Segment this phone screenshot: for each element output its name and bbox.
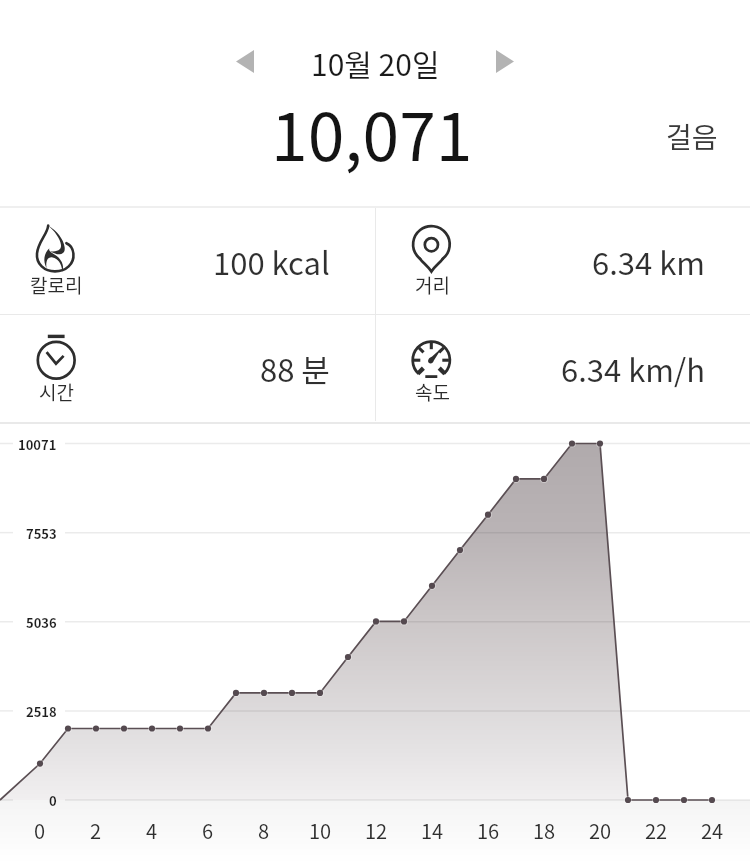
button[interactable]: Previous day xyxy=(222,38,268,85)
staticText: 5036 xyxy=(26,613,57,632)
staticText: 6.34 km xyxy=(592,239,705,284)
staticText: 8 xyxy=(258,816,270,840)
staticText: 88 분 xyxy=(260,346,330,391)
staticText: 10월 20일 xyxy=(311,41,440,84)
staticText: 20 xyxy=(589,816,612,840)
staticText: 0 xyxy=(49,791,57,810)
staticText: 걸음 xyxy=(666,116,718,157)
staticText: 6 xyxy=(202,816,214,840)
button[interactable]: 시간 xyxy=(0,315,375,421)
staticText: 거리 xyxy=(415,271,450,299)
staticText: 속도 xyxy=(415,378,450,406)
staticText: 18 xyxy=(533,816,556,840)
staticText: 0 xyxy=(34,816,46,840)
button[interactable]: 10월 20일 xyxy=(296,32,454,92)
staticText: 7553 xyxy=(26,524,57,543)
staticText: 2 xyxy=(90,816,102,840)
staticText: 6.34 km/h xyxy=(561,346,705,391)
staticText: 4 xyxy=(146,816,158,840)
staticText: 칼로리 xyxy=(30,271,83,299)
staticText: 16 xyxy=(477,816,500,840)
staticText: 100 kcal xyxy=(213,239,330,284)
button[interactable]: 칼로리 xyxy=(0,208,375,314)
staticText: 시간 xyxy=(39,378,74,406)
button[interactable]: 속도 xyxy=(376,315,750,421)
staticText: 14 xyxy=(421,816,444,840)
staticText: 10071 xyxy=(18,435,57,454)
staticText: 12 xyxy=(365,816,388,840)
button[interactable]: Next day xyxy=(482,38,528,85)
button[interactable]: 거리 xyxy=(376,208,750,314)
staticText: 2518 xyxy=(26,702,57,721)
staticText: 10,071 xyxy=(271,84,473,180)
staticText: 22 xyxy=(645,816,668,840)
staticText: 24 xyxy=(701,816,724,840)
staticText: 10 xyxy=(309,816,332,840)
